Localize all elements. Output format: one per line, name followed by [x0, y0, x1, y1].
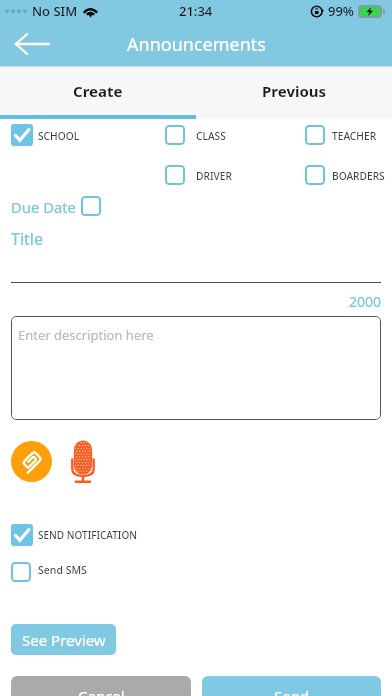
button[interactable]: Unchecked [81, 196, 101, 216]
staticText: See Preview [22, 630, 106, 650]
staticText: 2000 [349, 292, 382, 311]
staticText: Due Date [11, 197, 76, 217]
button[interactable]: Enter description here [11, 316, 381, 420]
staticText: TEACHER [332, 129, 377, 143]
button[interactable]: Send [202, 676, 381, 696]
button[interactable]: Unchecked [165, 125, 185, 145]
staticText: 21:34 [179, 2, 213, 20]
staticText: Cancel [78, 686, 125, 696]
button[interactable]: Unchecked [305, 165, 325, 185]
button[interactable]: Checked [11, 524, 33, 546]
button[interactable]: Create [0, 67, 196, 115]
staticText: SEND NOTIFICATION [38, 528, 137, 542]
button[interactable]: Unchecked [165, 165, 185, 185]
button[interactable]: Unchecked [11, 562, 31, 582]
button[interactable]: Checked [11, 124, 33, 146]
staticText: SCHOOL [38, 129, 80, 143]
button[interactable]: Previous [196, 67, 392, 115]
staticText: Announcements [127, 32, 266, 57]
button[interactable]: See Preview [11, 624, 116, 655]
button[interactable]: Attach file [11, 441, 52, 482]
staticText: 99% [328, 2, 354, 20]
staticText: BOARDERS [332, 169, 385, 183]
button[interactable]: Back [10, 26, 54, 62]
staticText: Previous [262, 81, 327, 101]
staticText: Enter description here [18, 326, 154, 344]
staticText: Send SMS [38, 563, 87, 577]
staticText: DRIVER [196, 169, 232, 183]
staticText: No SIM [32, 2, 78, 20]
staticText: Title [11, 228, 43, 250]
button[interactable]: Unchecked [305, 125, 325, 145]
staticText: CLASS [196, 129, 226, 143]
button[interactable]: Record audio [69, 439, 97, 484]
button[interactable]: Cancel [11, 676, 191, 696]
staticText: Create [73, 81, 123, 101]
staticText: Send [274, 686, 310, 696]
